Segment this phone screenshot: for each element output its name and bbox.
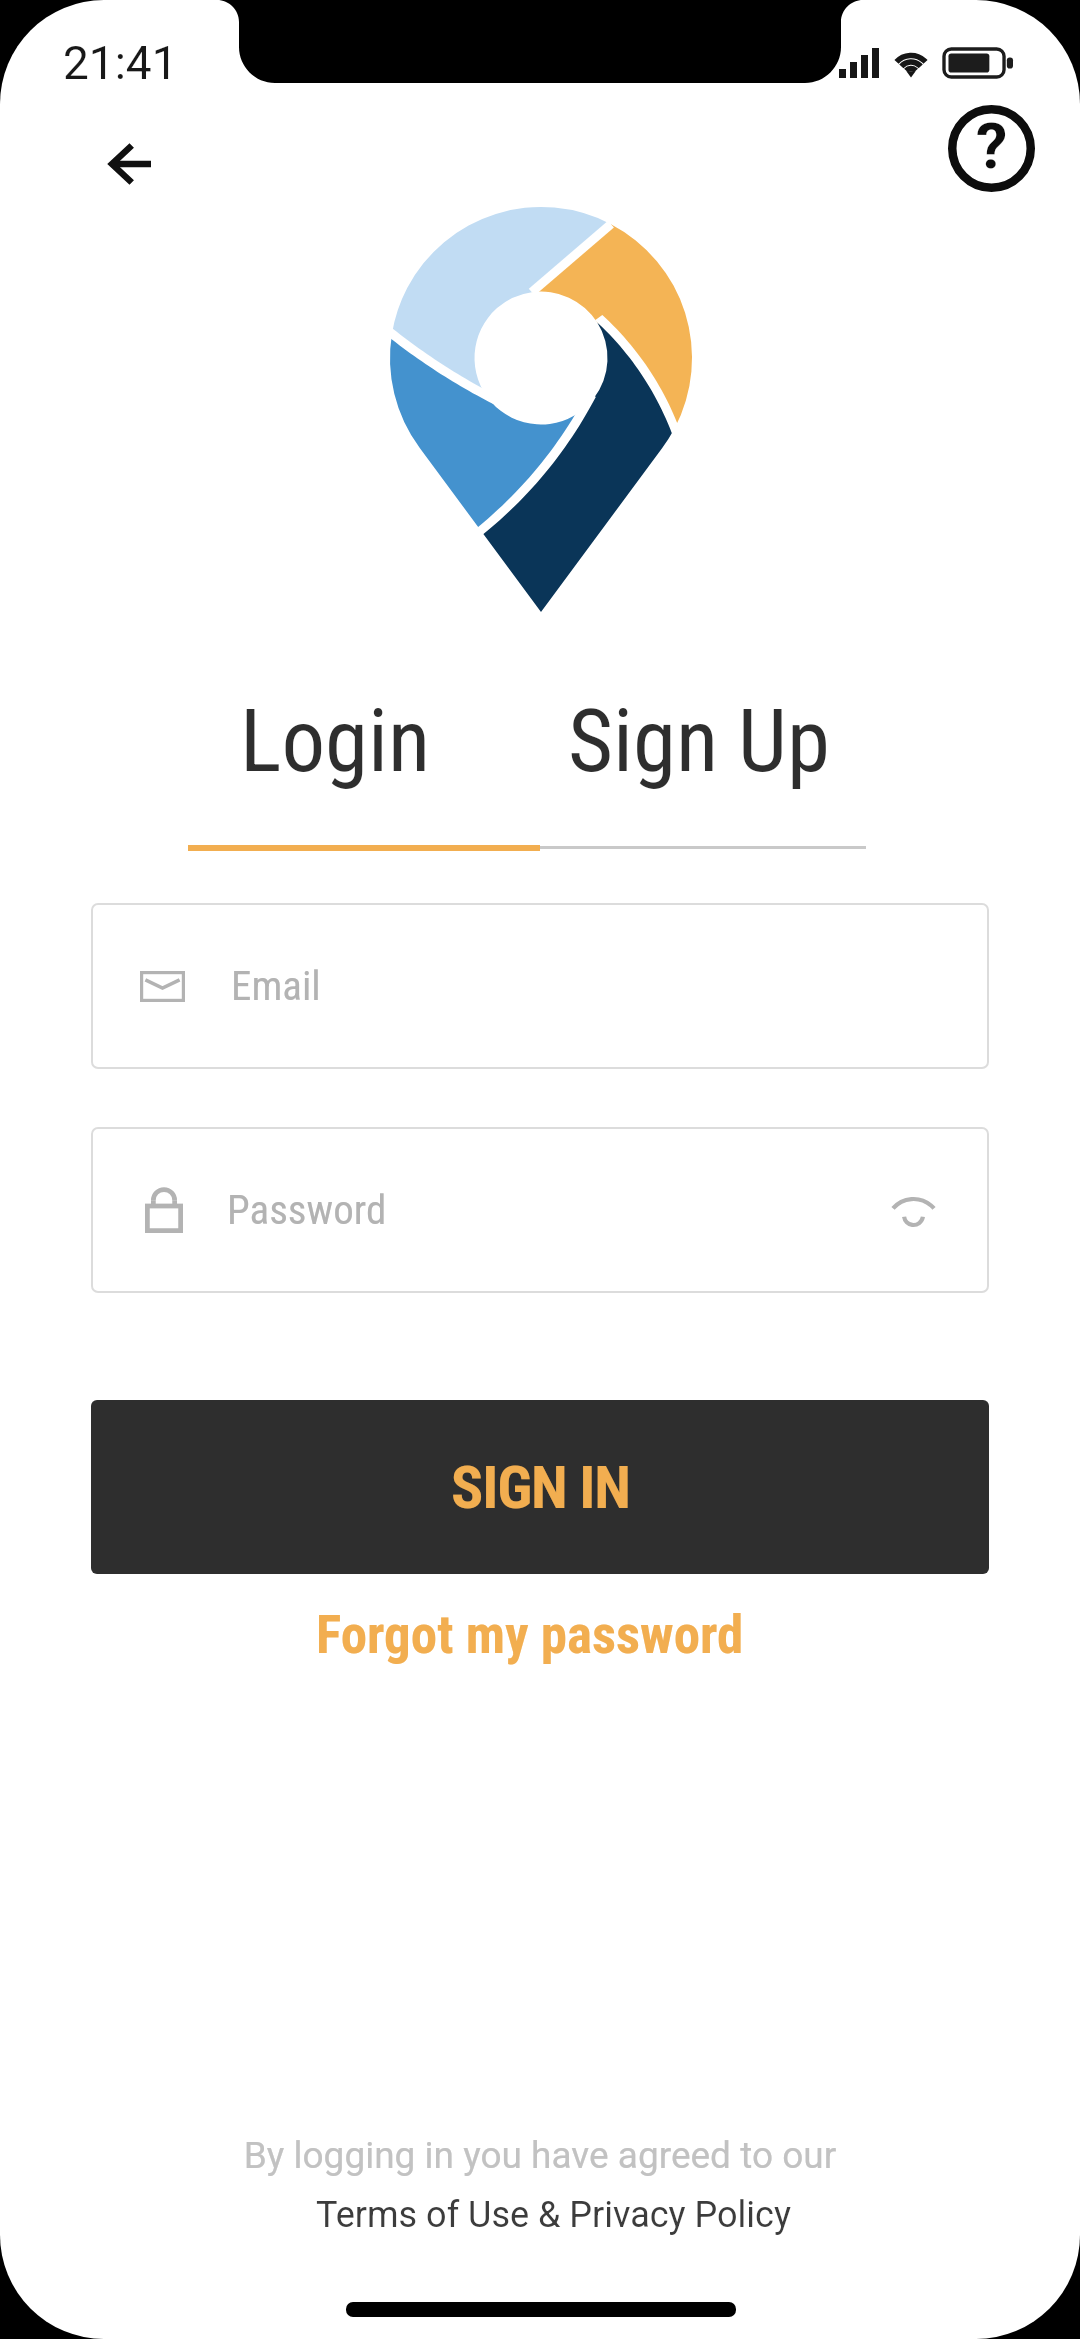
button[interactable]: Help — [948, 105, 1035, 192]
button[interactable]: Terms of Use & Privacy Policy — [253, 2182, 853, 2248]
staticText: Password — [227, 1186, 387, 1234]
staticText: Forgot my password — [316, 1604, 744, 1666]
button[interactable]: Back — [110, 144, 151, 184]
staticText: ? — [976, 110, 1008, 184]
staticText: Sign Up — [568, 690, 830, 792]
staticText: 21:41 — [63, 36, 178, 90]
staticText: Email — [231, 962, 321, 1010]
staticText: SIGN IN — [451, 1452, 630, 1522]
staticText: Terms of Use & Privacy Policy — [316, 2194, 791, 2236]
button[interactable]: Login — [159, 686, 511, 796]
button[interactable]: Forgot my password — [270, 1600, 790, 1670]
button[interactable]: Email — [91, 903, 989, 1069]
button[interactable]: Show password — [881, 1178, 945, 1242]
button[interactable]: SIGN IN — [91, 1400, 989, 1574]
button[interactable]: Password — [91, 1127, 989, 1293]
staticText: Login — [240, 690, 431, 792]
button[interactable]: Sign Up — [536, 686, 862, 796]
staticText: By logging in you have agreed to our — [0, 2134, 1080, 2177]
